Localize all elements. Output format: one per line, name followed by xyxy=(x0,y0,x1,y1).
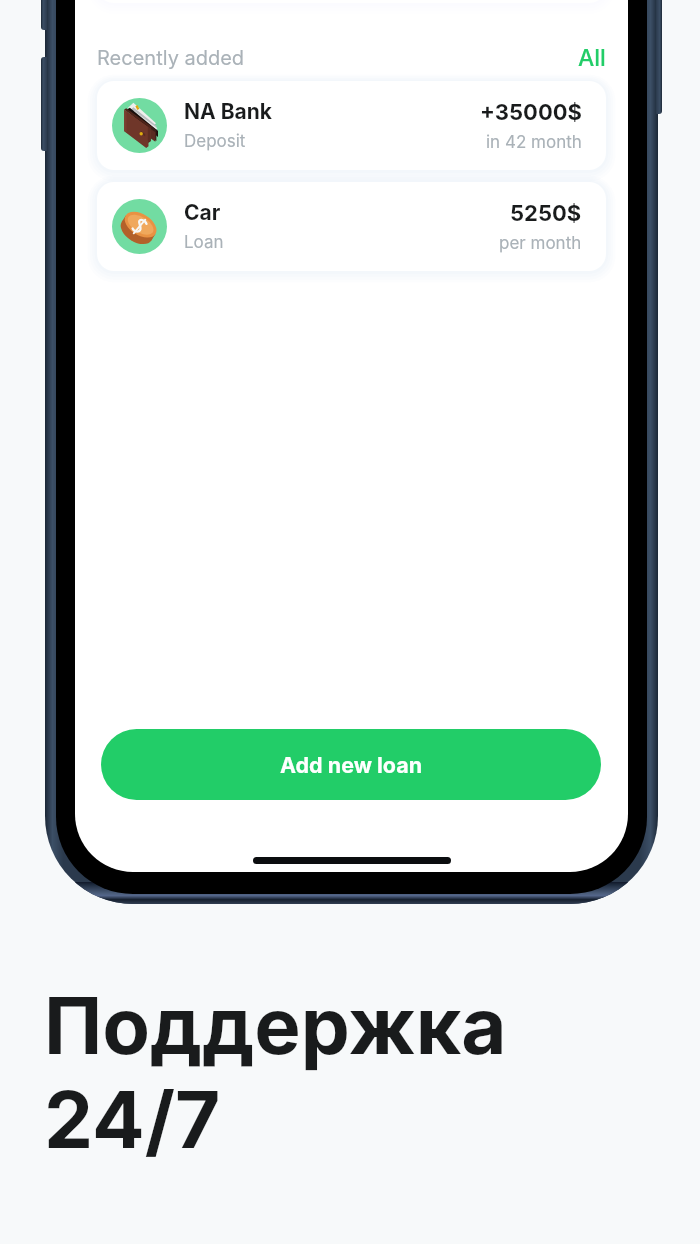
staticText: +35000$ xyxy=(480,99,582,126)
staticText: Loan xyxy=(184,232,224,253)
button[interactable]: Add new loan xyxy=(101,729,601,800)
button[interactable]: NA Bank xyxy=(97,81,606,170)
staticText: Car xyxy=(184,200,221,225)
staticText: Recently added xyxy=(97,46,245,70)
button[interactable]: All xyxy=(578,44,606,72)
staticText: in 42 month xyxy=(486,132,582,153)
staticText: Add new loan xyxy=(280,752,423,778)
staticText: 24/7 xyxy=(44,1072,221,1166)
staticText: All xyxy=(578,44,606,72)
staticText: Поддержка xyxy=(44,978,507,1072)
staticText: Deposit xyxy=(184,131,246,152)
staticText: 5250$ xyxy=(510,200,582,227)
staticText: per month xyxy=(499,233,582,254)
staticText: NA Bank xyxy=(184,99,272,124)
button[interactable]: Car xyxy=(97,182,606,271)
